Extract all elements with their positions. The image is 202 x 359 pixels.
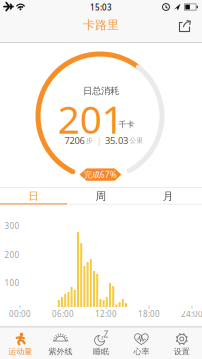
staticText: 06:00	[52, 309, 74, 319]
staticText: Z	[104, 329, 109, 340]
button[interactable]: 设置	[162, 326, 202, 359]
staticText: 日	[28, 190, 39, 203]
staticText: 公里	[129, 136, 143, 145]
staticText: 步	[86, 136, 93, 145]
button[interactable]: Share	[168, 14, 202, 43]
staticText: 200	[4, 250, 19, 260]
staticText: 100	[4, 278, 19, 288]
button[interactable]: 心率	[121, 326, 162, 359]
staticText: 千卡	[118, 120, 134, 129]
staticText: 周	[95, 190, 106, 203]
staticText: 日总消耗	[83, 85, 119, 97]
staticText: 15:03	[90, 2, 112, 13]
button[interactable]: 月	[135, 188, 202, 205]
button[interactable]: 运动量	[0, 326, 40, 359]
staticText: 卡路里	[83, 18, 119, 32]
staticText: 设置	[174, 347, 190, 356]
staticText: 完成67%	[84, 169, 117, 180]
staticText: 24:00	[181, 309, 202, 319]
staticText: 月	[163, 190, 174, 203]
staticText: 7206	[64, 134, 84, 147]
staticText: 35.03	[105, 134, 128, 147]
staticText: 00:00	[9, 309, 31, 319]
button[interactable]: 紫外线	[40, 326, 81, 359]
staticText: 心率	[133, 347, 149, 356]
staticText: 201	[58, 93, 124, 144]
staticText: 12:00	[95, 309, 117, 319]
staticText: |	[94, 134, 103, 147]
staticText: 紫外线	[49, 347, 73, 356]
staticText: 睡眠	[93, 347, 109, 356]
button[interactable]: z	[81, 326, 121, 359]
staticText: 300	[4, 221, 19, 231]
staticText: z	[101, 334, 104, 341]
button[interactable]: 日	[0, 188, 67, 205]
staticText: 18:00	[138, 309, 160, 319]
staticText: 运动量	[8, 347, 32, 356]
button[interactable]: 周	[67, 188, 135, 205]
